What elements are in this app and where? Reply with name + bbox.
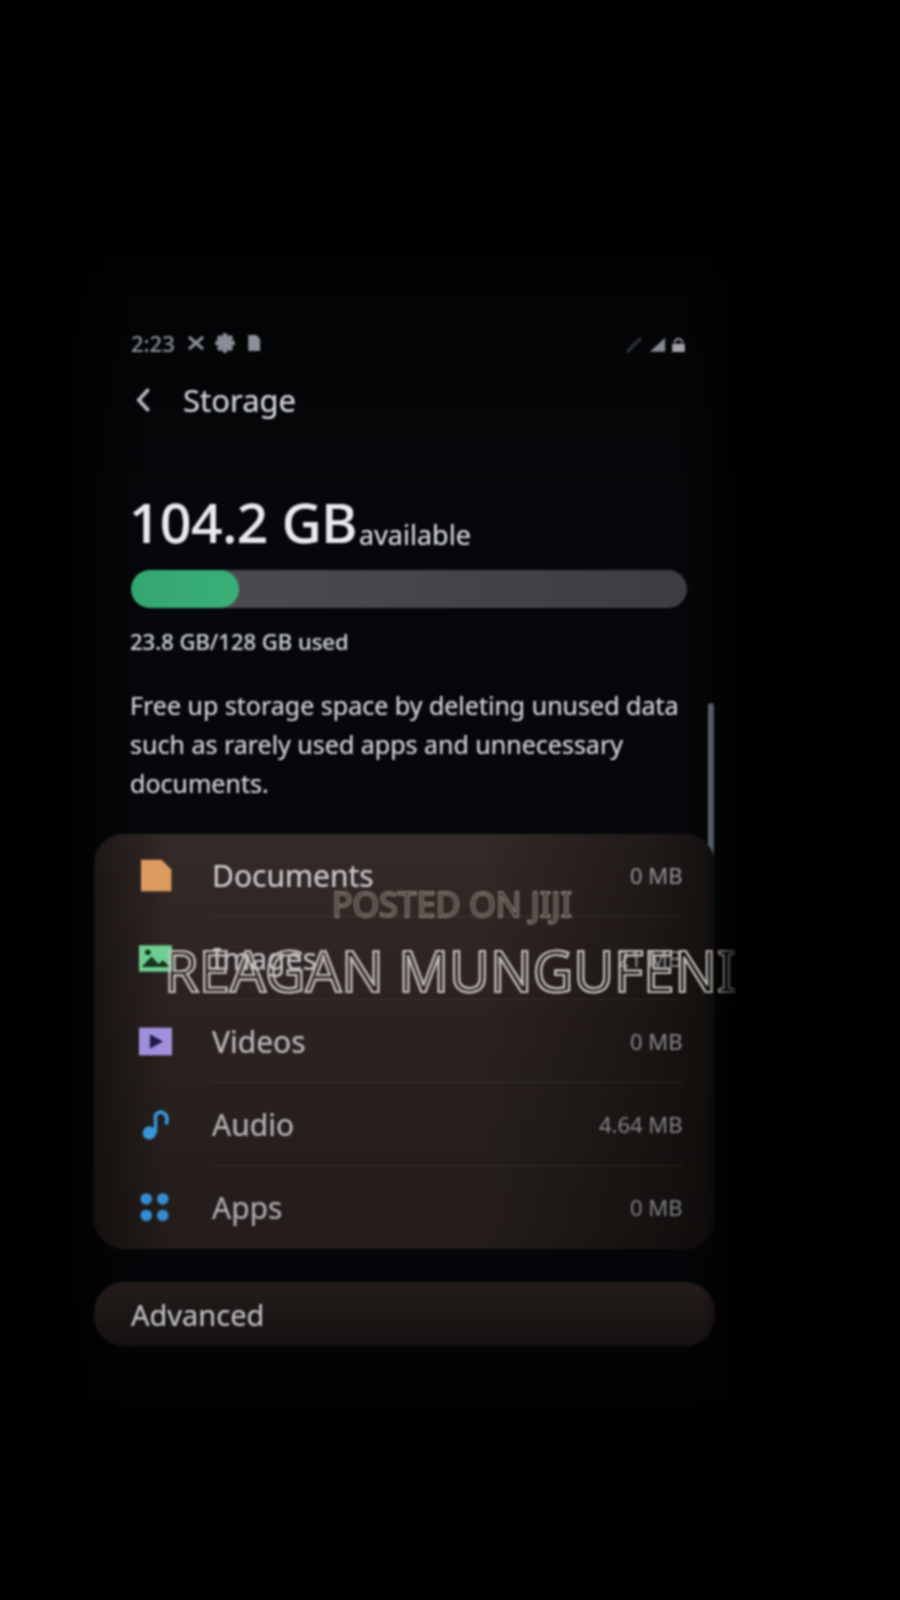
staticText: 104.2 GB	[129, 484, 357, 559]
staticText: POSTED ON JIJI	[332, 881, 573, 927]
staticText: available	[359, 516, 471, 553]
staticText: 0 MB	[630, 862, 683, 892]
staticText: Documents	[139, 857, 301, 898]
button[interactable]: Back	[124, 377, 170, 423]
staticText: 21 MB	[617, 945, 683, 975]
button[interactable]: Audio	[94, 1085, 715, 1167]
button[interactable]: Videos	[94, 1002, 715, 1084]
staticText: Audio	[139, 1106, 222, 1147]
staticText: 21 MB	[617, 943, 683, 973]
button[interactable]: Documents	[94, 836, 715, 918]
staticText: Storage	[170, 377, 284, 419]
staticText: Storage	[183, 379, 297, 421]
staticText: Apps	[139, 1189, 210, 1230]
staticText: Images	[139, 940, 244, 981]
staticText: REAGAN MUNGUFENI	[164, 932, 737, 1008]
staticText: 2:23	[131, 328, 175, 358]
staticText: 0 MB	[630, 1028, 683, 1058]
staticText: 4.64 MB	[599, 1109, 683, 1139]
button[interactable]: Apps	[94, 1168, 715, 1250]
staticText: 0 MB	[630, 1192, 683, 1222]
button[interactable]: Advanced	[94, 1282, 715, 1346]
button[interactable]: Storage	[170, 377, 330, 423]
staticText: Advanced	[131, 1295, 265, 1334]
staticText: 0 MB	[630, 1194, 683, 1224]
staticText: Audio	[212, 1104, 295, 1145]
staticText: Videos	[139, 1023, 233, 1064]
staticText: 23.8 GB/128 GB used	[130, 626, 349, 656]
staticText: 0 MB	[630, 860, 683, 890]
staticText: 4.64 MB	[599, 1111, 683, 1141]
button[interactable]: Images	[94, 919, 715, 1001]
staticText: Videos	[212, 1021, 306, 1062]
staticText: Advanced	[131, 1295, 265, 1334]
staticText: Apps	[212, 1187, 283, 1228]
staticText: Free up storage space by deleting unused…	[130, 688, 679, 800]
staticText: Documents	[212, 855, 374, 896]
staticText: Images	[212, 938, 317, 979]
staticText: 0 MB	[630, 1026, 683, 1056]
